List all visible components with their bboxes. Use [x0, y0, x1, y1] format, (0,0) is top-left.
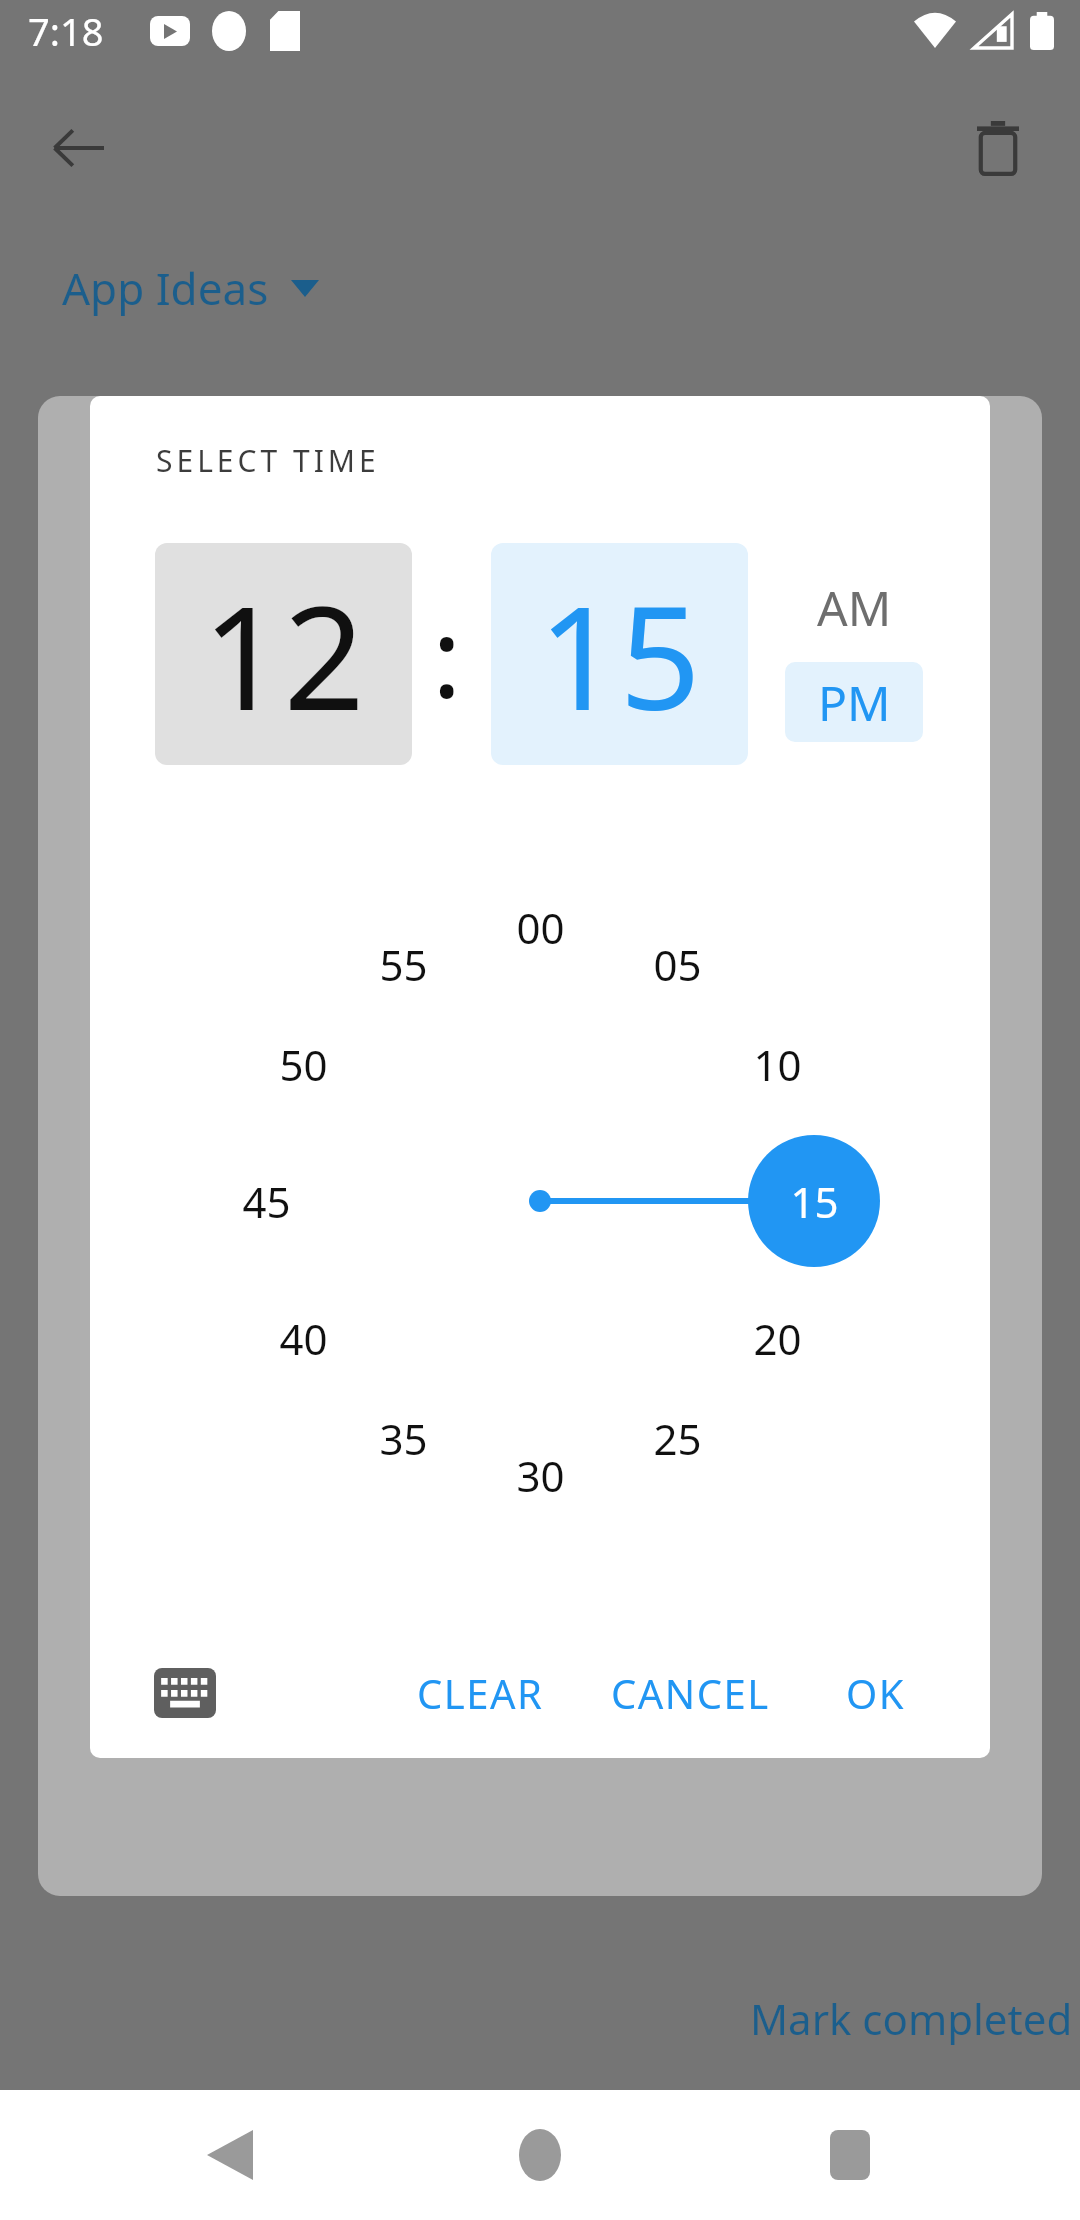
staticText: 10 [753, 1036, 802, 1093]
button[interactable]: Mark completed [750, 1990, 1073, 2047]
button[interactable]: Home [460, 2090, 620, 2220]
staticText: AM [817, 575, 892, 640]
button[interactable]: Back [150, 2090, 310, 2220]
staticText: SELECT TIME [156, 440, 380, 481]
staticText: 15 [790, 1173, 839, 1230]
staticText: PM [818, 670, 891, 735]
staticText: : [432, 579, 462, 729]
staticText: 55 [379, 936, 428, 993]
staticText: 35 [379, 1410, 428, 1467]
staticText: CLEAR [417, 1666, 544, 1720]
button[interactable]: Back [30, 100, 126, 196]
staticText: 30 [516, 1447, 565, 1504]
staticText: 25 [653, 1410, 702, 1467]
staticText: 20 [753, 1310, 802, 1367]
staticText: OK [846, 1666, 905, 1720]
button[interactable] [190, 851, 890, 1551]
staticText: 50 [279, 1036, 328, 1093]
staticText: 7:18 [28, 5, 104, 57]
button[interactable]: Recents [770, 2090, 930, 2220]
staticText: 00 [516, 899, 565, 956]
staticText: 05 [653, 936, 702, 993]
button[interactable]: 12 [155, 543, 412, 765]
staticText: 45 [242, 1173, 291, 1230]
button[interactable]: 15 [491, 543, 748, 765]
button[interactable]: CLEAR [390, 1649, 570, 1737]
button[interactable]: Switch to text input mode [150, 1658, 220, 1728]
staticText: CANCEL [611, 1666, 770, 1720]
button[interactable]: PM [785, 662, 923, 742]
button[interactable]: App Ideas [62, 258, 319, 318]
staticText: 15 [538, 558, 701, 751]
staticText: 40 [279, 1310, 328, 1367]
button[interactable]: AM [785, 570, 923, 644]
button[interactable]: Delete [950, 100, 1046, 196]
button[interactable]: OK [816, 1649, 934, 1737]
button[interactable]: CANCEL [590, 1649, 790, 1737]
staticText: App Ideas [62, 258, 269, 318]
staticText: 12 [202, 558, 365, 751]
